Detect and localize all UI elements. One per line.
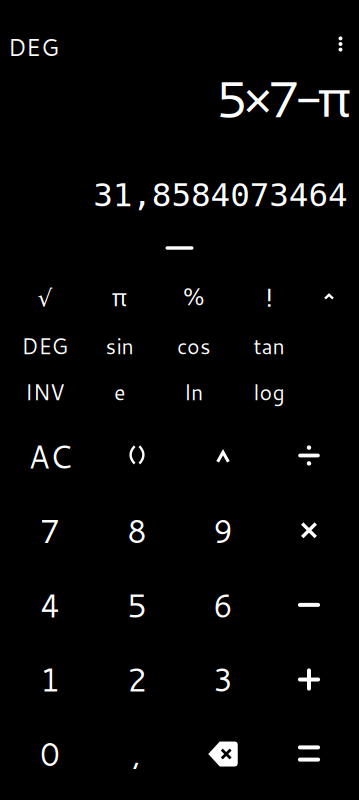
button[interactable]: Subtract	[266, 568, 352, 642]
staticText: 4	[40, 583, 60, 628]
staticText: %	[183, 284, 205, 311]
staticText: π	[112, 282, 127, 313]
staticText: 7	[40, 509, 60, 553]
staticText: 9	[213, 509, 233, 553]
button[interactable]: INV	[9, 368, 81, 415]
button[interactable]: Add	[266, 642, 352, 716]
button[interactable]: 3	[180, 642, 266, 716]
button[interactable]: 9	[180, 494, 266, 568]
staticText: INV	[25, 377, 65, 407]
staticText: log	[253, 377, 284, 407]
staticText: !	[265, 278, 273, 315]
button[interactable]: 4	[7, 568, 93, 642]
button[interactable]: sin	[83, 322, 155, 369]
staticText: √	[37, 285, 52, 312]
staticText: 5×7-π	[216, 63, 351, 133]
staticText: ln	[185, 377, 203, 407]
button[interactable]: tan	[233, 322, 305, 369]
button[interactable]: ln	[158, 368, 230, 415]
button[interactable]: 6	[180, 568, 266, 642]
button[interactable]: Equals	[266, 716, 352, 790]
staticText: 6	[213, 583, 233, 628]
button[interactable]: !	[233, 273, 305, 320]
button[interactable]: DEG	[8, 24, 84, 70]
staticText: DEG	[21, 331, 68, 361]
button[interactable]: More options	[320, 21, 359, 67]
staticText: cos	[177, 331, 211, 361]
staticText: tan	[253, 331, 284, 361]
button[interactable]: cos	[158, 322, 230, 369]
staticText: ,	[132, 732, 141, 776]
button[interactable]: 2	[94, 642, 180, 716]
staticText: sin	[105, 331, 133, 361]
button[interactable]: Power	[180, 420, 266, 494]
button[interactable]: ,	[94, 717, 180, 791]
staticText: DEG	[8, 30, 59, 63]
staticText: 3	[213, 657, 233, 702]
button[interactable]: √	[9, 275, 81, 322]
button[interactable]: 7	[7, 494, 93, 568]
staticText: AC	[28, 434, 71, 479]
button[interactable]: Backspace	[180, 717, 266, 791]
button[interactable]: 5	[94, 568, 180, 642]
staticText: 2	[127, 657, 147, 702]
staticText: 1	[40, 657, 60, 702]
staticText: 31,8584073464	[93, 176, 348, 214]
button[interactable]: 8	[94, 494, 180, 568]
staticText: 5	[127, 583, 147, 628]
button[interactable]: 1	[7, 642, 93, 716]
button[interactable]: Parentheses	[94, 418, 180, 492]
button[interactable]: e	[83, 368, 155, 415]
button[interactable]: π	[83, 274, 155, 321]
button[interactable]: Multiply	[266, 493, 352, 567]
button[interactable]: 0	[7, 717, 93, 791]
staticText: e	[114, 377, 125, 407]
staticText: 0	[40, 732, 60, 776]
button[interactable]: log	[233, 368, 305, 415]
button[interactable]: AC	[7, 419, 93, 493]
button[interactable]: %	[158, 274, 230, 321]
button[interactable]: Power	[293, 273, 359, 320]
button[interactable]: Divide	[266, 418, 352, 492]
staticText: 8	[127, 509, 147, 553]
button[interactable]: DEG	[9, 322, 81, 369]
